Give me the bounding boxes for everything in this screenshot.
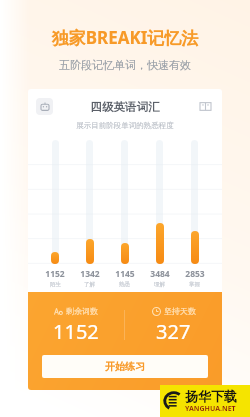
staticText: 了解	[84, 281, 95, 288]
staticText: 理解	[154, 281, 165, 288]
button[interactable]: 开始练习	[42, 355, 208, 378]
button[interactable]: 剩余词数	[28, 306, 124, 345]
staticText: 1342	[80, 268, 100, 280]
staticText: 1152	[45, 268, 65, 280]
staticText: 扬华下载	[185, 388, 237, 404]
staticText: 陌生	[50, 281, 61, 288]
staticText: 四级英语词汇	[53, 100, 197, 114]
staticText: YANGHUA.NET	[185, 404, 236, 414]
staticText: 独家BREAKI记忆法	[0, 26, 250, 49]
staticText: 五阶段记忆单词，快速有效	[0, 58, 250, 72]
staticText: 开始练习	[105, 360, 145, 373]
staticText: 剩余词数	[66, 306, 98, 316]
staticText: 327	[156, 318, 191, 345]
staticText: 1145	[115, 268, 135, 280]
staticText: 3484	[150, 268, 170, 280]
staticText: 掌握	[189, 281, 200, 288]
staticText: 坚持天数	[164, 306, 196, 316]
staticText: 2853	[185, 268, 205, 280]
button[interactable]: Word book	[197, 98, 214, 115]
button[interactable]: 坚持天数	[125, 306, 222, 345]
staticText: 1152	[53, 318, 99, 345]
staticText: 展示目前阶段单词的熟悉程度	[28, 121, 222, 130]
button[interactable]: Robot	[36, 98, 53, 115]
staticText: 熟悉	[119, 281, 130, 288]
